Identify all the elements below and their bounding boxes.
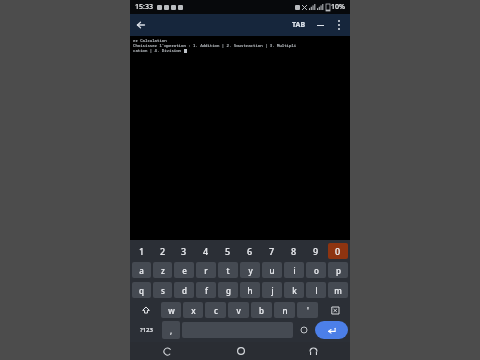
staticText: a <box>139 265 144 276</box>
button[interactable]: r <box>196 262 216 278</box>
button[interactable]: ' <box>297 302 318 318</box>
button[interactable]: e <box>174 262 194 278</box>
staticText: 8 <box>291 245 297 257</box>
staticText: er Calculation <box>133 38 167 43</box>
button[interactable]: Shift <box>132 301 159 319</box>
button[interactable]: i <box>284 262 304 278</box>
staticText: 0 <box>335 245 341 257</box>
button[interactable]: h <box>240 282 260 298</box>
button[interactable]: 4 <box>195 242 217 260</box>
staticText: t <box>226 265 230 276</box>
staticText: v <box>236 305 241 316</box>
button[interactable]: u <box>262 262 282 278</box>
button[interactable]: 2 <box>152 242 173 260</box>
staticText: z <box>161 265 165 276</box>
button[interactable]: , <box>162 321 180 339</box>
staticText: k <box>292 285 297 296</box>
staticText: f <box>205 285 208 296</box>
button[interactable]: f <box>196 282 216 298</box>
staticText: o <box>314 265 319 276</box>
button[interactable]: c <box>205 302 226 318</box>
staticText: l <box>315 285 318 296</box>
button[interactable]: q <box>132 282 151 298</box>
button[interactable]: 1 <box>131 242 152 260</box>
button[interactable]: p <box>328 262 348 278</box>
staticText: d <box>182 285 187 296</box>
button[interactable]: a <box>132 262 151 278</box>
staticText: b <box>259 305 264 316</box>
staticText: c <box>214 305 218 316</box>
button[interactable]: x <box>183 302 203 318</box>
button[interactable]: Enter <box>315 321 348 339</box>
staticText: ?123 <box>140 326 153 334</box>
staticText: y <box>248 265 253 276</box>
staticText: ' <box>307 305 309 316</box>
button[interactable]: ?123 <box>132 321 160 339</box>
button[interactable]: s <box>153 282 172 298</box>
button[interactable]: j <box>262 282 282 298</box>
button[interactable]: 9 <box>305 242 327 260</box>
button[interactable]: Back <box>130 342 204 360</box>
staticText: 15:33 <box>135 2 153 12</box>
button[interactable]: TAB <box>288 14 310 36</box>
button[interactable]: y <box>240 262 260 278</box>
button[interactable]: g <box>218 282 238 298</box>
button[interactable]: o <box>306 262 326 278</box>
button[interactable]: Backspace <box>320 301 348 319</box>
staticText: , <box>170 325 173 336</box>
staticText: 6 <box>247 245 253 257</box>
button[interactable]: l <box>306 282 326 298</box>
button[interactable]: Recents <box>277 342 350 360</box>
staticText: p <box>336 265 341 276</box>
button[interactable]: t <box>218 262 238 278</box>
button[interactable]: Home <box>204 342 277 360</box>
staticText: Choisissez l'operation : 1. Addition | 2… <box>133 43 297 48</box>
staticText: 9 <box>313 245 319 257</box>
button[interactable]: z <box>153 262 172 278</box>
button[interactable]: w <box>161 302 181 318</box>
button[interactable]: 5 <box>217 242 239 260</box>
staticText: n <box>282 305 288 316</box>
button[interactable]: 0 <box>327 242 349 260</box>
button[interactable]: 3 <box>173 242 195 260</box>
staticText: m <box>334 285 342 296</box>
button[interactable]: v <box>228 302 249 318</box>
button[interactable]: More options <box>330 14 348 36</box>
staticText: u <box>269 265 275 276</box>
staticText: i <box>293 265 296 276</box>
staticText: TAB <box>292 20 306 30</box>
button[interactable]: b <box>251 302 272 318</box>
staticText: 4 <box>203 245 209 257</box>
staticText: e <box>182 265 187 276</box>
staticText: x <box>191 305 196 316</box>
button[interactable]: d <box>174 282 194 298</box>
staticText: 2 <box>160 245 166 257</box>
staticText: 10% <box>331 2 345 12</box>
staticText: s <box>161 285 165 296</box>
staticText: 3 <box>181 245 187 257</box>
button[interactable]: k <box>284 282 304 298</box>
button[interactable]: 7 <box>261 242 283 260</box>
button[interactable]: Emoji <box>295 321 313 339</box>
staticText: 1 <box>139 245 145 257</box>
staticText: 5 <box>225 245 231 257</box>
button[interactable]: m <box>328 282 348 298</box>
staticText: w <box>168 305 175 316</box>
button[interactable]: Back <box>130 14 152 36</box>
staticText: g <box>226 285 231 296</box>
button[interactable]: n <box>274 302 295 318</box>
staticText: cation | 4. Division <box>133 48 184 53</box>
button[interactable]: Minimize <box>310 14 330 36</box>
button[interactable]: 8 <box>283 242 305 260</box>
staticText: j <box>271 285 274 296</box>
staticText: 7 <box>269 245 275 257</box>
staticText: r <box>204 265 208 276</box>
staticText: q <box>139 285 144 296</box>
button[interactable]: 6 <box>239 242 261 260</box>
staticText: h <box>247 285 253 296</box>
